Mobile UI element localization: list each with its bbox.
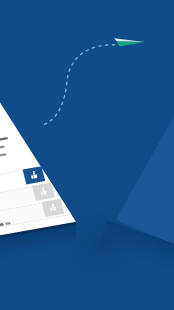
- button[interactable]: Survey promo illustration: [0, 0, 174, 310]
